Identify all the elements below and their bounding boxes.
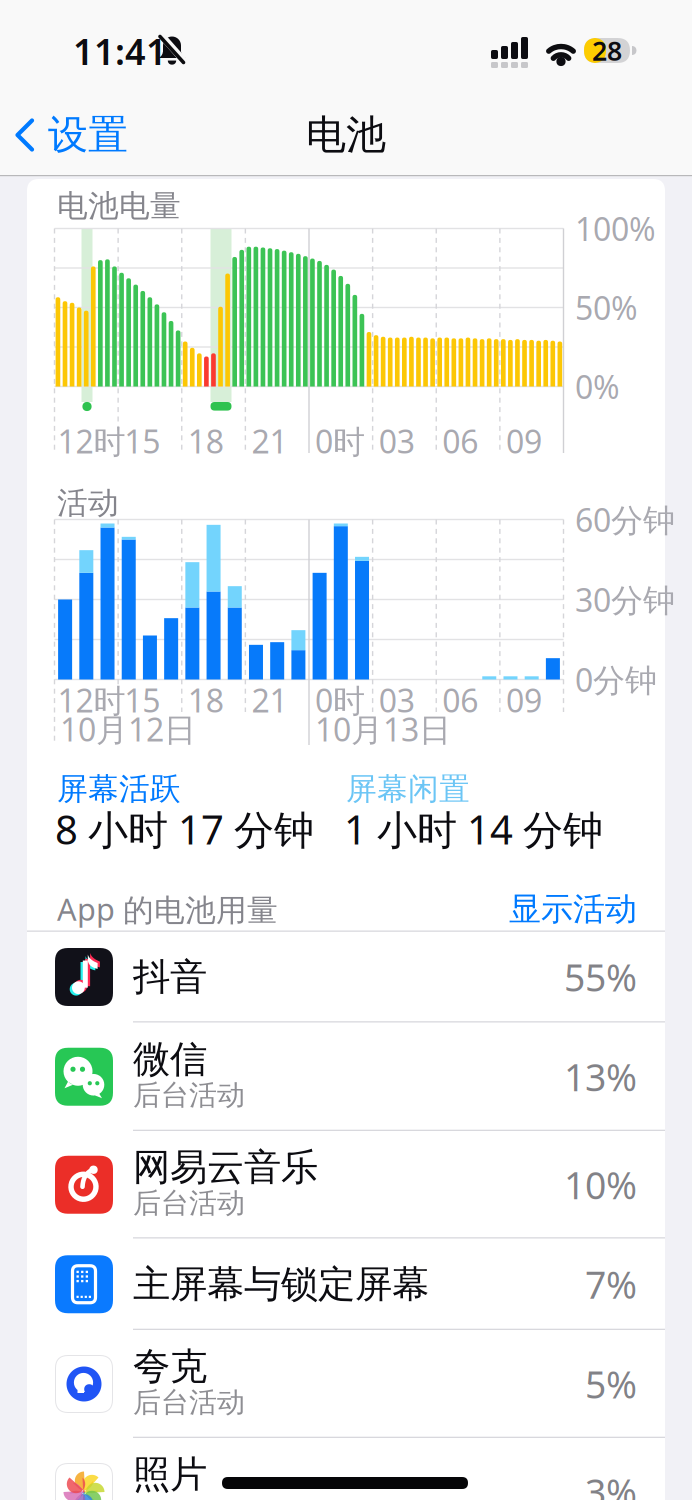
staticText: 1 小时 14 分钟	[344, 802, 603, 855]
staticText: 03	[379, 679, 415, 721]
staticText: 09	[506, 420, 542, 462]
staticText: 显示活动	[509, 889, 637, 929]
staticText: 100%	[575, 207, 656, 250]
staticText: 电池	[306, 110, 386, 159]
staticText: 60分钟	[575, 498, 675, 541]
button[interactable]: 主屏幕与锁定屏幕	[27, 1238, 665, 1330]
staticText: 屏幕活跃	[57, 770, 181, 808]
staticText: 12时	[57, 679, 125, 721]
staticText: 夸克	[133, 1344, 207, 1389]
staticText: 0%	[575, 365, 620, 408]
staticText: 11:41	[73, 27, 167, 75]
button[interactable]: 夸克	[27, 1330, 665, 1438]
staticText: 活动	[57, 484, 119, 522]
button[interactable]: 网易云音乐	[27, 1131, 665, 1238]
staticText: 7%	[585, 1259, 637, 1309]
staticText: 10月13日	[315, 708, 451, 750]
staticText: 照片	[133, 1452, 207, 1497]
staticText: 10%	[564, 1160, 637, 1210]
staticText: 8 小时 17 分钟	[55, 802, 314, 855]
staticText: 5%	[585, 1359, 637, 1409]
staticText: 30分钟	[575, 578, 675, 621]
staticText: 50%	[575, 286, 638, 329]
staticText: 主屏幕与锁定屏幕	[133, 1261, 429, 1307]
staticText: 18	[188, 420, 224, 462]
staticText: 0分钟	[575, 658, 657, 701]
staticText: 06	[442, 679, 478, 721]
staticText: 03	[379, 420, 415, 462]
button[interactable]: 抖音	[27, 931, 665, 1022]
staticText: 后台活动	[133, 1078, 245, 1112]
staticText: 0时	[315, 420, 365, 462]
button[interactable]: 微信	[27, 1022, 665, 1131]
staticText: 3%	[585, 1467, 637, 1500]
staticText: 电池电量	[57, 187, 181, 225]
staticText: 28	[592, 33, 622, 68]
staticText: 13%	[564, 1052, 637, 1102]
staticText: 21	[251, 420, 287, 462]
staticText: 后台活动	[133, 1385, 245, 1420]
staticText: 12时	[57, 420, 125, 462]
staticText: 15	[124, 679, 160, 721]
button[interactable]: 显示活动	[497, 889, 637, 929]
staticText: 06	[442, 420, 478, 462]
staticText: 15	[124, 420, 160, 462]
staticText: 18	[188, 679, 224, 721]
staticText: 微信	[133, 1036, 207, 1082]
staticText: 09	[506, 679, 542, 721]
button[interactable]: 返回设置	[14, 113, 154, 157]
staticText: 屏幕闲置	[346, 770, 470, 808]
staticText: 后台活动	[133, 1186, 245, 1220]
button[interactable]: 照片	[27, 1438, 665, 1500]
staticText: 设置	[48, 110, 128, 159]
staticText: App 的电池用量	[57, 889, 278, 929]
staticText: 21	[251, 679, 287, 721]
staticText: 55%	[564, 952, 637, 1002]
staticText: 0时	[315, 679, 365, 721]
staticText: 抖音	[133, 954, 207, 1000]
staticText: 网易云音乐	[133, 1144, 318, 1190]
staticText: 10月12日	[60, 708, 196, 750]
